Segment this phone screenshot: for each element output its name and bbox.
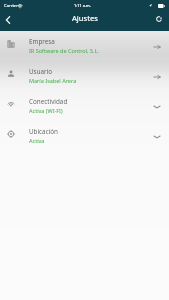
staticText: Activa (WI-FI) [29,107,63,114]
button[interactable]: Conectividad [0,92,169,122]
staticText: Activa [29,137,45,144]
staticText: Carrier [4,3,18,9]
staticText: Empresa [29,37,55,46]
button[interactable]: Ubicación [0,122,169,152]
staticText: Ubicación [29,127,59,136]
button[interactable]: Refresh [149,11,169,31]
button[interactable]: Usuario [0,62,169,92]
staticText: Conectividad [29,97,68,106]
staticText: 1:11 a.m. [74,3,91,8]
button[interactable]: Back [0,11,20,31]
staticText: María Isabel Arera [29,77,77,84]
staticText: Ajustes [72,13,98,23]
staticText: Usuario [29,67,53,76]
button[interactable]: Empresa [0,32,169,62]
staticText: IR Software de Control, S.L. [29,47,99,54]
